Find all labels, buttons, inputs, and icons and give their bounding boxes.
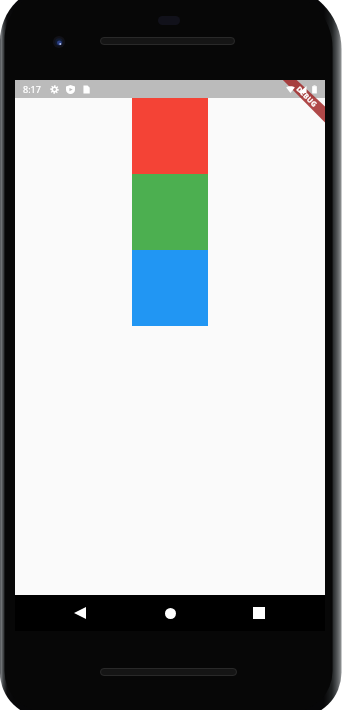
button[interactable]: Back <box>53 595 107 631</box>
staticText: 8:17 <box>23 83 41 95</box>
staticText: DEBUG <box>294 84 319 110</box>
button[interactable]: Recent apps <box>232 595 286 631</box>
button[interactable]: Home <box>143 595 197 631</box>
